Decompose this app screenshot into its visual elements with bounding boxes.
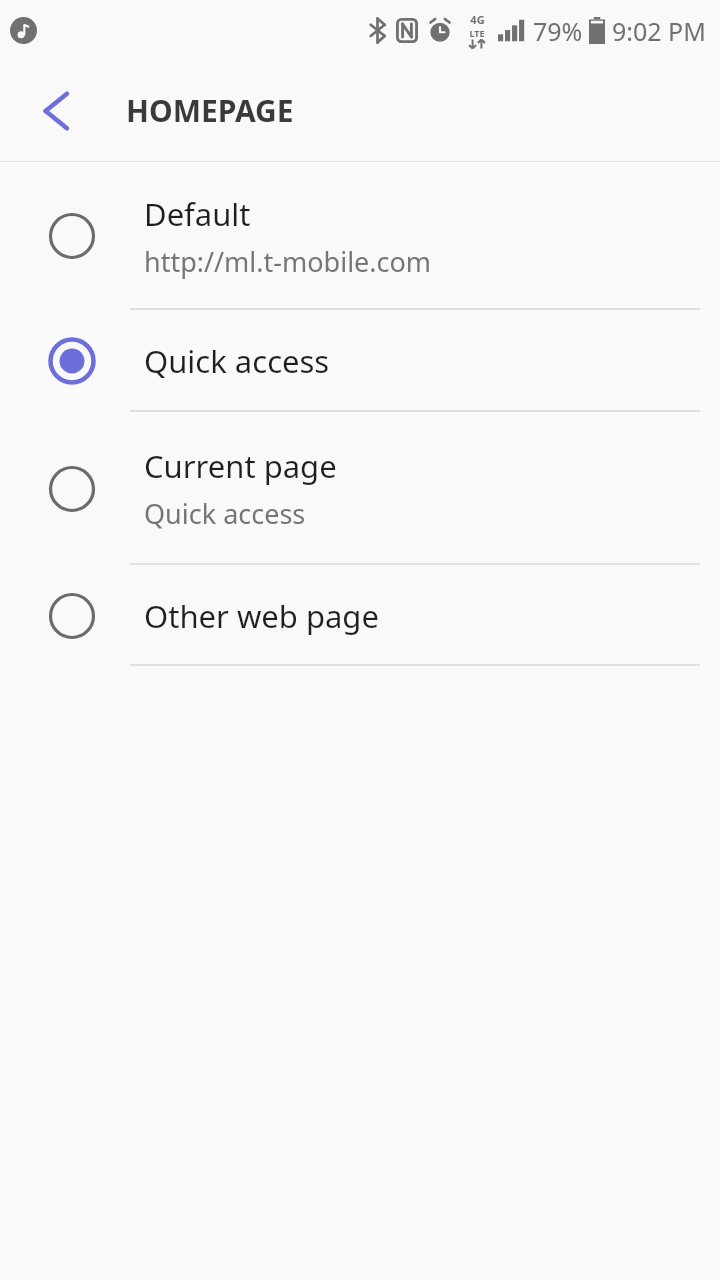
button[interactable]: Default: [0, 162, 720, 310]
staticText: Quick access: [144, 495, 306, 532]
staticText: 79%: [533, 14, 583, 48]
staticText: Other web page: [144, 595, 379, 637]
staticText: Quick access: [144, 340, 330, 382]
button[interactable]: Other web page: [0, 565, 720, 666]
staticText: 9:02 PM: [612, 14, 706, 48]
button[interactable]: Quick access: [0, 310, 720, 412]
staticText: Current page: [144, 445, 337, 487]
staticText: 4G: [470, 12, 485, 27]
staticText: HOMEPAGE: [126, 90, 294, 131]
staticText: LTE: [469, 27, 485, 39]
button[interactable]: Current page: [0, 412, 720, 565]
staticText: Default: [144, 193, 251, 235]
staticText: http://ml.t-mobile.com: [144, 243, 432, 280]
button[interactable]: Back: [22, 77, 90, 145]
